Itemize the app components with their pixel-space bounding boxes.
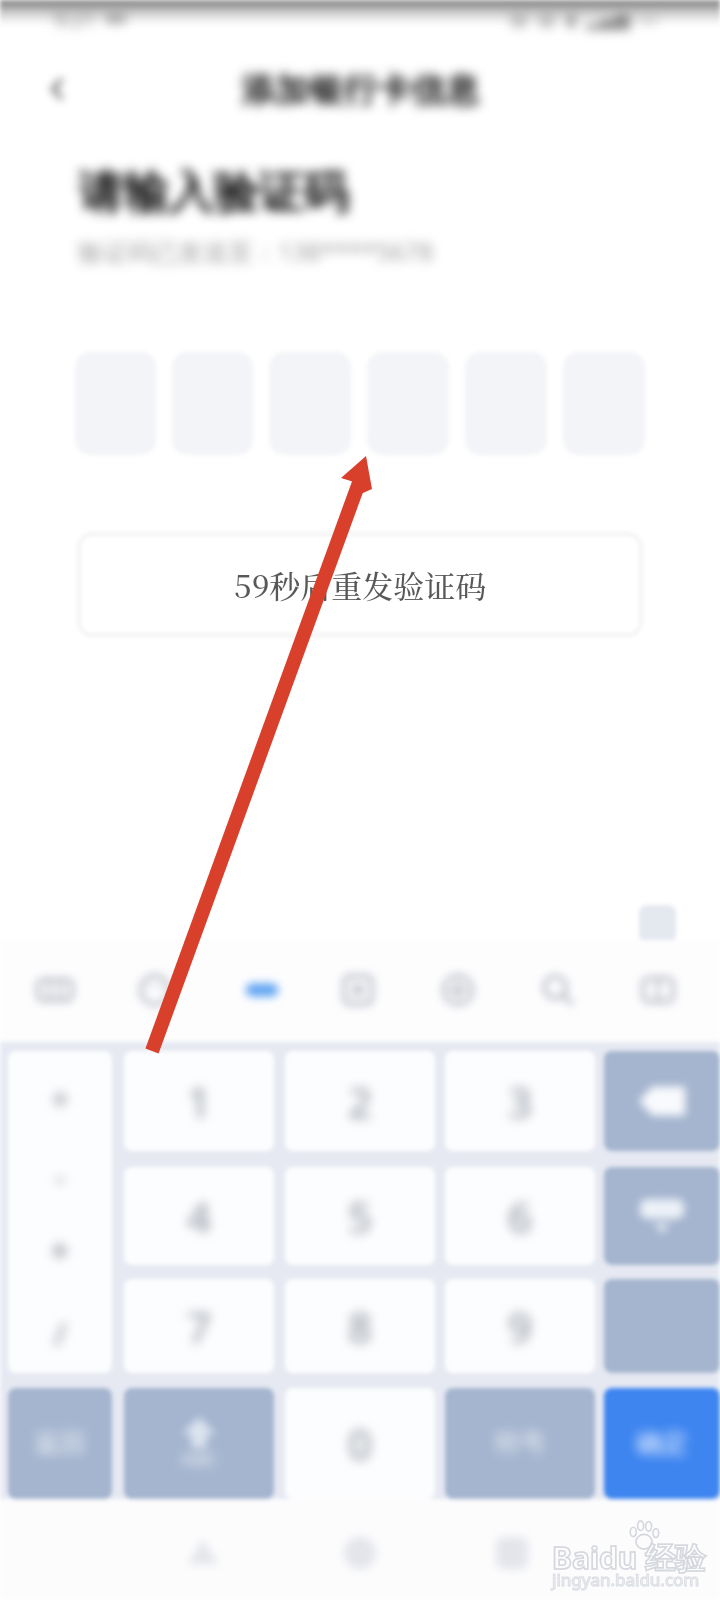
button[interactable]: Recent apps (476, 1517, 548, 1589)
staticText: 0 (348, 1415, 373, 1472)
staticText: 5 (348, 1188, 373, 1245)
button[interactable]: ABC (124, 1388, 274, 1499)
button[interactable]: Hide keyboard (604, 1167, 720, 1265)
staticText: Baidu 经验 (552, 1537, 706, 1578)
staticText: ▮▮ (106, 5, 126, 26)
button[interactable]: Input tool 4 (330, 962, 386, 1018)
button[interactable]: Symbols (8, 1051, 112, 1373)
staticText: - (55, 1155, 66, 1199)
button[interactable]: Keyboard handle (639, 905, 676, 942)
button[interactable]: Input tool 7 (630, 962, 686, 1018)
staticText: * (51, 1234, 69, 1278)
button[interactable]: Back (167, 1517, 239, 1589)
staticText: 2 (348, 1073, 373, 1130)
staticText: 3 (508, 1073, 533, 1130)
button[interactable]: 7 (124, 1279, 274, 1373)
staticText: jingyan.baidu.com (552, 1568, 700, 1591)
button[interactable]: 2 (285, 1051, 435, 1151)
button[interactable]: 6 (445, 1167, 595, 1265)
staticText: 符号 (494, 1427, 546, 1460)
staticText: 返回 (34, 1427, 86, 1460)
button[interactable]: Input tool 2 (127, 962, 183, 1018)
staticText: 确定 (636, 1427, 688, 1460)
button[interactable]: Home (324, 1517, 396, 1589)
button[interactable]: Input tool 6 (530, 962, 586, 1018)
staticText: 8 (348, 1298, 373, 1355)
staticText: ▤ ▤ ▮ ▂▄▆ ▭ (510, 5, 658, 31)
button[interactable]: 9 (445, 1279, 595, 1373)
staticText: 添加银行卡信息 (241, 69, 479, 112)
staticText: 9:21 (54, 5, 96, 34)
staticText: + (51, 1077, 70, 1121)
button[interactable]: 1 (124, 1051, 274, 1151)
button[interactable]: Input tool 1 (27, 962, 83, 1018)
staticText: ABC (181, 1446, 218, 1472)
staticText: 59秒后重发验证码 (234, 562, 487, 607)
staticText: / (54, 1312, 67, 1356)
button[interactable]: Resend verification code in 59 seconds (78, 533, 642, 636)
button[interactable]: 8 (285, 1279, 435, 1373)
staticText: 6 (508, 1188, 533, 1245)
staticText: 1 (187, 1073, 212, 1130)
button[interactable]: Confirm (604, 1388, 720, 1499)
button[interactable]: 5 (285, 1167, 435, 1265)
button[interactable]: 3 (445, 1051, 595, 1151)
button[interactable]: 4 (124, 1167, 274, 1265)
button[interactable]: Back (30, 62, 84, 116)
staticText: 7 (187, 1298, 212, 1355)
button[interactable]: 0 (285, 1388, 435, 1499)
button[interactable]: Back (8, 1388, 112, 1499)
staticText: 验证码已发送至：138****5678 (78, 234, 434, 268)
staticText: 请输入验证码 (78, 165, 348, 222)
button[interactable]: Symbol (445, 1388, 595, 1499)
button[interactable]: Input tool 3 (234, 962, 290, 1018)
button[interactable]: Resend verification code (78, 533, 642, 636)
staticText: 9 (508, 1298, 533, 1355)
staticText: 4 (187, 1188, 212, 1245)
button[interactable]: Input tool 5 (430, 962, 486, 1018)
button[interactable]: Blank (604, 1279, 720, 1373)
button[interactable]: Backspace (604, 1051, 720, 1151)
